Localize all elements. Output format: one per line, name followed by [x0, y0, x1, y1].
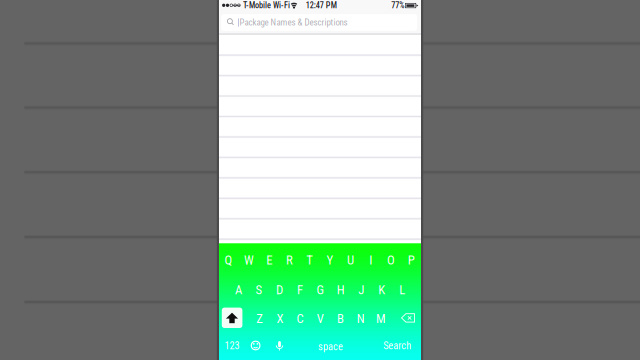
- button[interactable]: P: [0, 0, 640, 360]
- staticText: X: [276, 311, 283, 326]
- staticText: F: [297, 282, 303, 297]
- staticText: K: [378, 282, 385, 297]
- button[interactable]: U: [0, 0, 640, 360]
- button[interactable]: X: [0, 0, 640, 360]
- button[interactable]: W: [0, 0, 640, 360]
- button[interactable]: Emoji: [0, 0, 640, 360]
- button[interactable]: space: [0, 0, 640, 360]
- button[interactable]: I: [0, 0, 640, 360]
- staticText: H: [337, 282, 345, 297]
- staticText: V: [317, 311, 324, 326]
- staticText: space: [318, 340, 343, 353]
- staticText: Package Names & Descriptions: [239, 17, 347, 28]
- staticText: 123: [224, 340, 239, 352]
- button[interactable]: F: [0, 0, 640, 360]
- staticText: N: [357, 311, 365, 326]
- button[interactable]: L: [0, 0, 640, 360]
- staticText: 77%: [391, 1, 404, 10]
- button[interactable]: 123: [0, 0, 640, 360]
- button[interactable]: Z: [0, 0, 640, 360]
- staticText: G: [316, 282, 324, 297]
- button[interactable]: B: [0, 0, 640, 360]
- button[interactable]: Shift: [0, 0, 640, 360]
- button[interactable]: N: [0, 0, 640, 360]
- button[interactable]: M: [0, 0, 640, 360]
- button[interactable]: E: [0, 0, 640, 360]
- button[interactable]: V: [0, 0, 640, 360]
- staticText: U: [347, 252, 354, 267]
- staticText: Search: [383, 340, 411, 352]
- button[interactable]: Delete: [0, 0, 640, 360]
- button[interactable]: O: [0, 0, 640, 360]
- staticText: B: [337, 311, 344, 326]
- staticText: I: [369, 252, 372, 267]
- staticText: O: [387, 252, 395, 267]
- button[interactable]: R: [0, 0, 640, 360]
- button[interactable]: A: [0, 0, 640, 360]
- button[interactable]: Dictation: [0, 0, 640, 360]
- staticText: Y: [327, 252, 334, 267]
- staticText: J: [358, 282, 364, 297]
- button[interactable]: G: [0, 0, 640, 360]
- button[interactable]: Q: [0, 0, 640, 360]
- staticText: R: [286, 252, 293, 267]
- staticText: A: [235, 282, 242, 297]
- button[interactable]: D: [0, 0, 640, 360]
- button[interactable]: S: [0, 0, 640, 360]
- button[interactable]: Search: [0, 0, 640, 360]
- button[interactable]: K: [0, 0, 640, 360]
- button[interactable]: C: [0, 0, 640, 360]
- staticText: W: [244, 252, 254, 267]
- staticText: Q: [225, 252, 233, 267]
- button[interactable]: Y: [0, 0, 640, 360]
- staticText: T-Mobile Wi-Fi: [243, 1, 290, 10]
- button[interactable]: Search field: [0, 0, 640, 360]
- staticText: S: [256, 282, 263, 297]
- staticText: Z: [256, 311, 263, 326]
- staticText: D: [276, 282, 283, 297]
- staticText: T: [306, 252, 313, 267]
- button[interactable]: J: [0, 0, 640, 360]
- button[interactable]: H: [0, 0, 640, 360]
- staticText: P: [408, 252, 415, 267]
- staticText: 12:47 PM: [306, 1, 337, 10]
- staticText: E: [266, 252, 272, 267]
- staticText: L: [399, 282, 405, 297]
- staticText: C: [297, 311, 304, 326]
- button[interactable]: T: [0, 0, 640, 360]
- staticText: M: [376, 311, 386, 326]
